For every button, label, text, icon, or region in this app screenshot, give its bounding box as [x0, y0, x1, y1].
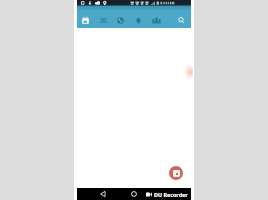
- button[interactable]: Groups: [148, 9, 165, 31]
- button[interactable]: Events: [77, 9, 94, 31]
- staticText: DU Recorder: [154, 191, 188, 198]
- button[interactable]: Back: [96, 188, 110, 200]
- button[interactable]: Feed: [95, 9, 112, 31]
- button[interactable]: Notifications: [130, 9, 147, 31]
- button[interactable]: Home: [127, 188, 141, 200]
- button[interactable]: Search: [171, 9, 191, 31]
- button[interactable]: Record: [169, 166, 183, 180]
- button[interactable]: Discover: [112, 9, 129, 31]
